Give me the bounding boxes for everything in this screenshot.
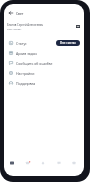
button[interactable]: ID card: [73, 22, 82, 31]
button[interactable]: Поддержка: [4, 78, 84, 88]
button[interactable]: Back: [5, 9, 16, 17]
button[interactable]: Scan: [37, 157, 48, 168]
staticText: Статус: [16, 41, 27, 46]
staticText: Сообщить об ошибке: [16, 61, 53, 66]
staticText: ООО «Сигма»: [7, 28, 22, 31]
staticText: Поддержка: [16, 81, 36, 86]
staticText: Блатов Сергей Алексеевич: [7, 23, 44, 27]
button[interactable]: Profile: [68, 157, 79, 168]
staticText: Настройки: [16, 71, 35, 76]
button[interactable]: Home: [6, 157, 17, 168]
button[interactable]: Вне смены: [56, 40, 80, 46]
button[interactable]: Архив задач: [4, 48, 84, 58]
button[interactable]: Настройки: [4, 68, 84, 78]
staticText: Архив задач: [16, 51, 37, 56]
staticText: Свет: [16, 11, 24, 15]
staticText: Вне смены: [60, 41, 76, 45]
button[interactable]: Статус: [4, 38, 84, 48]
button[interactable]: Chat: [53, 157, 64, 168]
button[interactable]: Сообщить об ошибке: [4, 58, 84, 68]
button[interactable]: Tasks: [22, 157, 33, 168]
